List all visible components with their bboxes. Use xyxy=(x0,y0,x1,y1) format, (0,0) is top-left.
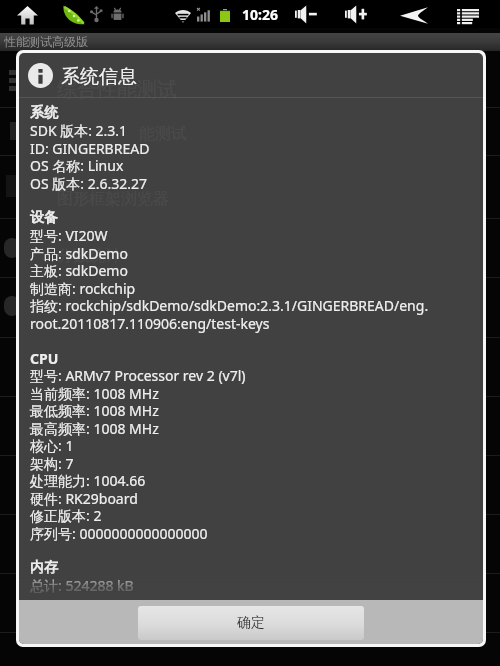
staticText: 内存 xyxy=(30,559,58,577)
button[interactable]: 确定 xyxy=(138,606,364,640)
staticText: 指纹: rockchip/sdkDemo/sdkDemo:2.3.1/GINGE… xyxy=(30,296,429,315)
staticText: 分数统计 xyxy=(57,246,121,266)
staticText: 型号: ARMv7 Processor rev 2 (v7l) xyxy=(30,366,246,385)
staticText: 最低频率: 1008 MHz xyxy=(30,401,159,420)
button[interactable]: Volume down xyxy=(295,4,319,24)
staticText: 序列号: 0000000000000000 xyxy=(30,524,208,543)
staticText: 处理能力: 1004.66 xyxy=(30,471,146,490)
staticText: 硬件: RK29board xyxy=(30,489,138,508)
staticText: 能测试 xyxy=(139,124,187,144)
staticText: 产品: sdkDemo xyxy=(30,244,128,263)
staticText: 修正版本: 2 xyxy=(30,506,102,525)
staticText: SDK 版本: 2.3.1 xyxy=(30,121,128,140)
staticText: 性能测试高级版 xyxy=(4,34,88,49)
staticText: OS 名称: Linux xyxy=(30,156,124,175)
staticText: 核心: 1 xyxy=(30,436,74,455)
staticText: 系统 xyxy=(30,104,58,122)
staticText: 设备 xyxy=(30,209,58,227)
staticText: ID: GINGERBREAD xyxy=(30,139,150,158)
button[interactable]: Back xyxy=(400,7,428,24)
staticText: CPU xyxy=(30,349,59,368)
staticText: 系统信息 xyxy=(61,65,137,89)
staticText: OS 版本: 2.6.32.27 xyxy=(30,174,147,193)
staticText: 型号: VI20W xyxy=(30,226,108,245)
staticText: 主板: sdkDemo xyxy=(30,261,128,280)
staticText: 确定 xyxy=(237,614,265,632)
staticText: 图形框架浏览器 xyxy=(57,189,169,209)
staticText: 制造商: rockchip xyxy=(30,279,136,298)
staticText: 综合性能测试 xyxy=(57,77,177,102)
staticText: root.20110817.110906:eng/test-keys xyxy=(30,314,270,333)
staticText: 架构: 7 xyxy=(30,454,74,473)
staticText: 10:26 xyxy=(242,5,278,24)
button[interactable]: Home xyxy=(14,4,40,26)
button[interactable]: Menu xyxy=(457,9,479,25)
staticText: 总计: 524288 kB xyxy=(30,576,134,595)
button[interactable]: Volume up xyxy=(345,4,369,24)
staticText: 最高频率: 1008 MHz xyxy=(30,419,159,438)
staticText: 当前频率: 1008 MHz xyxy=(30,384,159,403)
